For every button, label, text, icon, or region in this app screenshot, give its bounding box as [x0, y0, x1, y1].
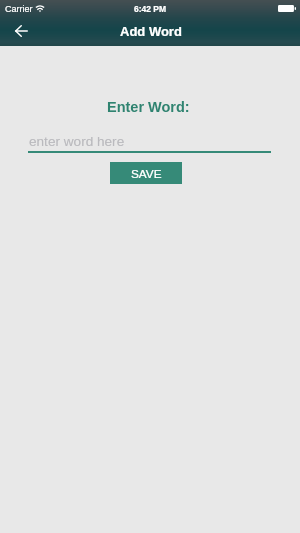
button[interactable]: Back: [6, 18, 36, 44]
staticText: 6:42 PM: [134, 4, 167, 13]
staticText: Enter Word:: [107, 99, 190, 115]
button[interactable]: enter word here: [28, 131, 271, 153]
button[interactable]: SAVE: [110, 162, 182, 184]
staticText: Add Word: [120, 24, 182, 39]
staticText: SAVE: [131, 167, 162, 180]
staticText: enter word here: [29, 134, 125, 149]
staticText: Carrier: [5, 4, 33, 14]
